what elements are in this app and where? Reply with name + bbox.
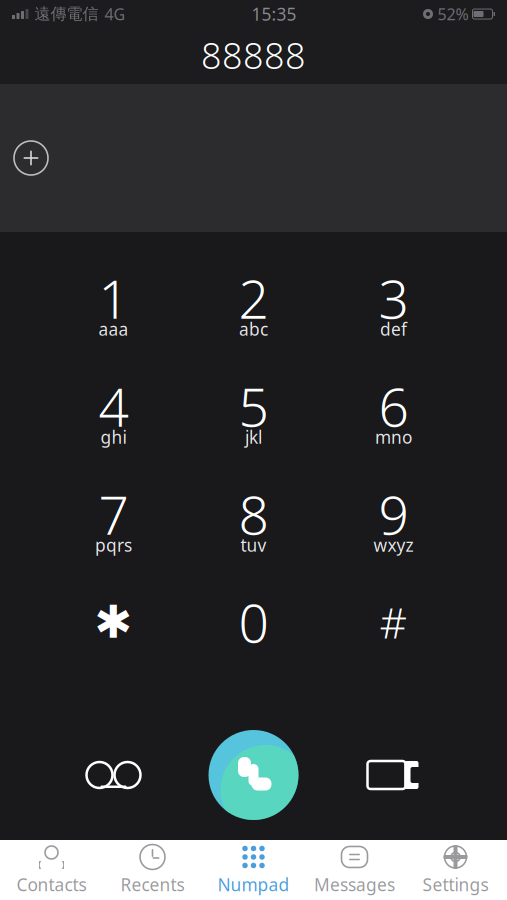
staticText: # [379,594,407,650]
button[interactable]: 0 [183,594,323,666]
button[interactable]: 9 [323,486,463,558]
staticText: Recents [120,873,184,896]
button[interactable]: # [323,594,463,666]
staticText: 52% [437,3,468,25]
staticText: def [380,317,407,340]
staticText: tuv [240,533,266,556]
button[interactable]: Voicemail [43,730,183,820]
button[interactable]: 4 [43,378,183,450]
button[interactable]: 2 [183,270,323,342]
staticText: 1 [98,263,128,333]
button[interactable]: 8 [183,486,323,558]
button[interactable]: 3 [323,270,463,342]
button[interactable]: Numpad [203,841,304,899]
staticText: aaa [98,317,128,340]
staticText: 5 [238,371,268,441]
button[interactable]: Contacts [1,841,102,899]
staticText: ✱ [94,596,132,648]
staticText: Messages [314,873,395,896]
button[interactable]: ✱ [43,594,183,666]
button[interactable]: 7 [43,486,183,558]
button[interactable]: Add contact [9,136,53,180]
staticText: 3 [378,263,408,333]
staticText: wxyz [373,533,413,556]
staticText: Numpad [217,873,289,896]
staticText: 2 [238,263,268,333]
staticText: 遠傳電信 [34,4,98,24]
staticText: ghi [100,425,126,448]
staticText: jkl [245,425,262,448]
button[interactable]: Call [183,730,323,820]
button[interactable]: 1 [43,270,183,342]
staticText: Settings [422,873,488,896]
staticText: abc [239,317,268,340]
staticText: pqrs [95,533,132,556]
staticText: mno [375,425,412,448]
staticText: 8 [238,479,268,549]
staticText: 6 [378,371,408,441]
button[interactable]: 6 [323,378,463,450]
button[interactable]: Settings [405,841,506,899]
staticText: 15:35 [251,2,296,25]
staticText: Contacts [16,873,86,896]
button[interactable]: Recents [102,841,203,899]
staticText: 88888 [201,31,306,79]
staticText: 7 [98,479,128,549]
staticText: 0 [238,587,268,657]
staticText: 4G [104,3,125,25]
button[interactable]: Video call [323,730,463,820]
staticText: 4 [98,371,128,441]
button[interactable]: Messages [304,841,405,899]
button[interactable]: 5 [183,378,323,450]
staticText: 9 [378,479,408,549]
